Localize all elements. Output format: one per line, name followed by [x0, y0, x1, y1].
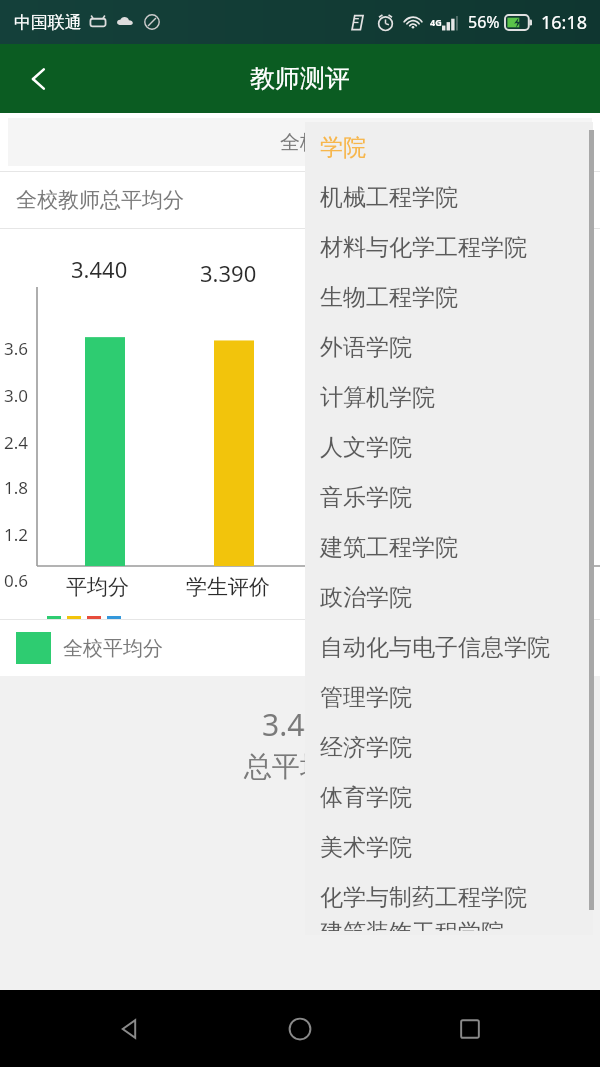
- staticText: 全校平均分: [63, 636, 163, 661]
- button[interactable]: 学院: [305, 122, 593, 172]
- staticText: 56%: [468, 11, 500, 33]
- button[interactable]: 建筑装饰工程学院: [305, 922, 593, 935]
- staticText: 1.8: [4, 476, 29, 499]
- staticText: 音乐学院: [320, 483, 412, 512]
- button[interactable]: 管理学院: [305, 672, 593, 722]
- staticText: 学院: [320, 133, 366, 162]
- staticText: 全校: [280, 130, 320, 155]
- button[interactable]: 外语学院: [305, 322, 593, 372]
- staticText: 建筑工程学院: [320, 533, 458, 562]
- staticText: 3.390: [200, 258, 257, 288]
- staticText: 政治学院: [320, 583, 412, 612]
- button[interactable]: 体育学院: [305, 772, 593, 822]
- staticText: 0.0: [4, 616, 29, 639]
- staticText: 建筑装饰工程学院: [320, 918, 504, 931]
- staticText: 管理学院: [320, 683, 412, 712]
- staticText: 4G: [430, 16, 442, 28]
- button[interactable]: 全校: [8, 118, 592, 166]
- button[interactable]: 自动化与电子信息学院: [305, 622, 593, 672]
- button[interactable]: 经济学院: [305, 722, 593, 772]
- staticText: 人文学院: [320, 433, 412, 462]
- staticText: 计算机学院: [320, 383, 435, 412]
- staticText: 机械工程学院: [320, 183, 458, 212]
- staticText: 2.4: [4, 431, 29, 454]
- button[interactable]: 材料与化学工程学院: [305, 222, 593, 272]
- staticText: 平均分: [66, 574, 129, 600]
- staticText: 材料与化学工程学院: [320, 233, 527, 262]
- staticText: 外语学院: [320, 333, 412, 362]
- staticText: 学生评价: [186, 574, 270, 600]
- button[interactable]: Back: [0, 44, 78, 113]
- staticText: 3.6: [4, 337, 29, 360]
- button[interactable]: Back: [90, 990, 170, 1067]
- staticText: 总平均分: [244, 749, 356, 784]
- button[interactable]: 音乐学院: [305, 472, 593, 522]
- button[interactable]: Home: [260, 990, 340, 1067]
- staticText: 美术学院: [320, 833, 412, 862]
- staticText: 3.0: [4, 384, 29, 407]
- staticText: 体育学院: [320, 783, 412, 812]
- staticText: 3.440: [71, 254, 128, 284]
- button[interactable]: 人文学院: [305, 422, 593, 472]
- staticText: 生物工程学院: [320, 283, 458, 312]
- staticText: 中国联通: [14, 12, 82, 33]
- button[interactable]: 化学与制药工程学院: [305, 872, 593, 922]
- staticText: 16:18: [541, 10, 588, 35]
- button[interactable]: 计算机学院: [305, 372, 593, 422]
- staticText: 3.440: [262, 704, 339, 745]
- staticText: 自动化与电子信息学院: [320, 633, 550, 662]
- staticText: 化学与制药工程学院: [320, 883, 527, 912]
- button[interactable]: 美术学院: [305, 822, 593, 872]
- staticText: 经济学院: [320, 733, 412, 762]
- staticText: 教师测评: [250, 63, 350, 94]
- staticText: 0.6: [4, 569, 29, 592]
- button[interactable]: 机械工程学院: [305, 172, 593, 222]
- button[interactable]: 建筑工程学院: [305, 522, 593, 572]
- button[interactable]: 生物工程学院: [305, 272, 593, 322]
- button[interactable]: Recent apps: [430, 990, 510, 1067]
- staticText: 1.2: [4, 523, 29, 546]
- button[interactable]: 政治学院: [305, 572, 593, 622]
- staticText: 全校教师总平均分: [16, 187, 184, 213]
